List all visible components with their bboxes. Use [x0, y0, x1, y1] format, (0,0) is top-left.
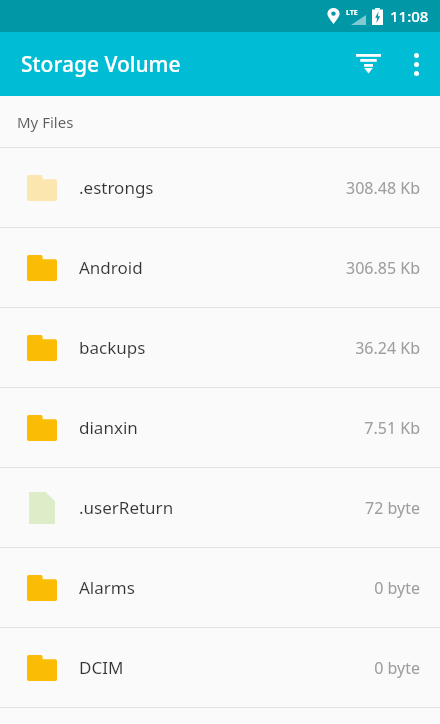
staticText: Storage Volume [21, 50, 181, 79]
staticText: 72 byte [365, 497, 420, 519]
staticText: .estrongs [79, 176, 346, 199]
staticText: 308.48 Kb [346, 177, 420, 199]
staticText: 306.85 Kb [346, 257, 420, 279]
button[interactable]: .estrongs [0, 148, 440, 227]
staticText: 7.51 Kb [364, 417, 420, 439]
button[interactable]: dianxin [0, 388, 440, 467]
button[interactable]: Android [0, 228, 440, 307]
staticText: 0 byte [374, 577, 420, 599]
button[interactable]: .userReturn [0, 468, 440, 547]
staticText: Alarms [79, 576, 374, 599]
staticText: 0 byte [374, 657, 420, 679]
button[interactable]: My Files [0, 96, 440, 147]
button[interactable]: backups [0, 308, 440, 387]
staticText: backups [79, 336, 355, 359]
button[interactable]: Sort [344, 40, 392, 88]
staticText: .userReturn [79, 496, 365, 519]
staticText: DCIM [79, 656, 374, 679]
staticText: LTE [346, 8, 358, 18]
staticText: Android [79, 256, 346, 279]
staticText: 36.24 Kb [355, 337, 420, 359]
staticText: My Files [17, 112, 74, 132]
button[interactable]: Alarms [0, 548, 440, 627]
staticText: 11:08 [390, 6, 429, 26]
button[interactable]: DCIM [0, 628, 440, 707]
staticText: dianxin [79, 416, 364, 439]
button[interactable]: More options [392, 40, 440, 88]
